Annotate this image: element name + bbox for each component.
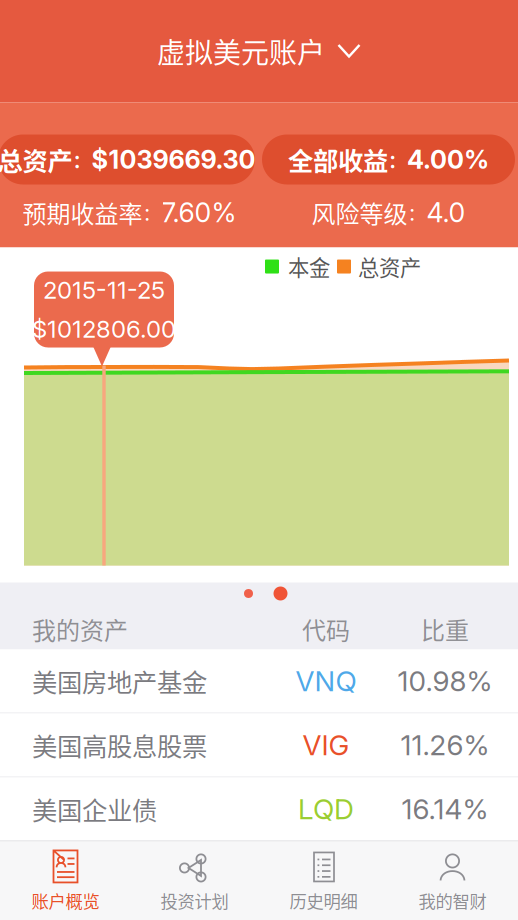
staticText: 11.26% <box>400 728 489 762</box>
staticText: ： <box>72 146 91 173</box>
staticText: 虚拟美元账户 <box>157 31 325 71</box>
staticText: 4.00% <box>407 144 489 175</box>
staticText: 美国高股息股票 <box>32 727 207 763</box>
staticText: 2015-11-25 <box>43 275 165 304</box>
button[interactable]: 美国房地产基金 <box>0 649 518 712</box>
staticText: 预期收益率 <box>22 195 142 230</box>
staticText: $1039669.30 <box>91 144 255 175</box>
staticText: 投资计划 <box>160 888 228 913</box>
staticText: 我的资产 <box>32 612 128 646</box>
staticText: 7.60% <box>161 196 236 229</box>
button[interactable]: 虚拟美元账户 <box>0 0 518 102</box>
staticText: 全部收益 <box>288 141 388 178</box>
staticText: VNQ <box>295 664 356 698</box>
button[interactable]: 历史明细 <box>259 841 388 920</box>
button[interactable]: 投资计划 <box>130 841 259 920</box>
button[interactable]: 美国高股息股票 <box>0 713 518 776</box>
staticText: 总资产 <box>0 141 72 178</box>
staticText: 账户概览 <box>31 888 99 913</box>
staticText: 历史明细 <box>289 888 357 913</box>
staticText: LQD <box>298 792 354 826</box>
staticText: 4.0 <box>426 196 465 229</box>
staticText: ： <box>142 199 161 226</box>
staticText: 代码 <box>302 612 350 646</box>
staticText: 10.98% <box>397 664 492 698</box>
button[interactable]: 账户概览 <box>1 841 130 920</box>
staticText: 美国房地产基金 <box>32 663 207 699</box>
staticText: 风险等级 <box>311 195 407 230</box>
staticText: VIG <box>302 728 349 762</box>
staticText: ： <box>388 146 407 173</box>
staticText: 美国企业债 <box>32 791 157 827</box>
staticText: $1012806.00 <box>32 314 176 343</box>
button[interactable]: 美国企业债 <box>0 777 518 840</box>
staticText: 本金 <box>288 251 330 282</box>
staticText: 比重 <box>421 612 469 646</box>
staticText: 16.14% <box>401 792 488 826</box>
staticText: 总资产 <box>358 251 421 282</box>
button[interactable]: 我的智财 <box>388 841 517 920</box>
staticText: ： <box>407 199 426 226</box>
staticText: 我的智财 <box>418 888 486 913</box>
